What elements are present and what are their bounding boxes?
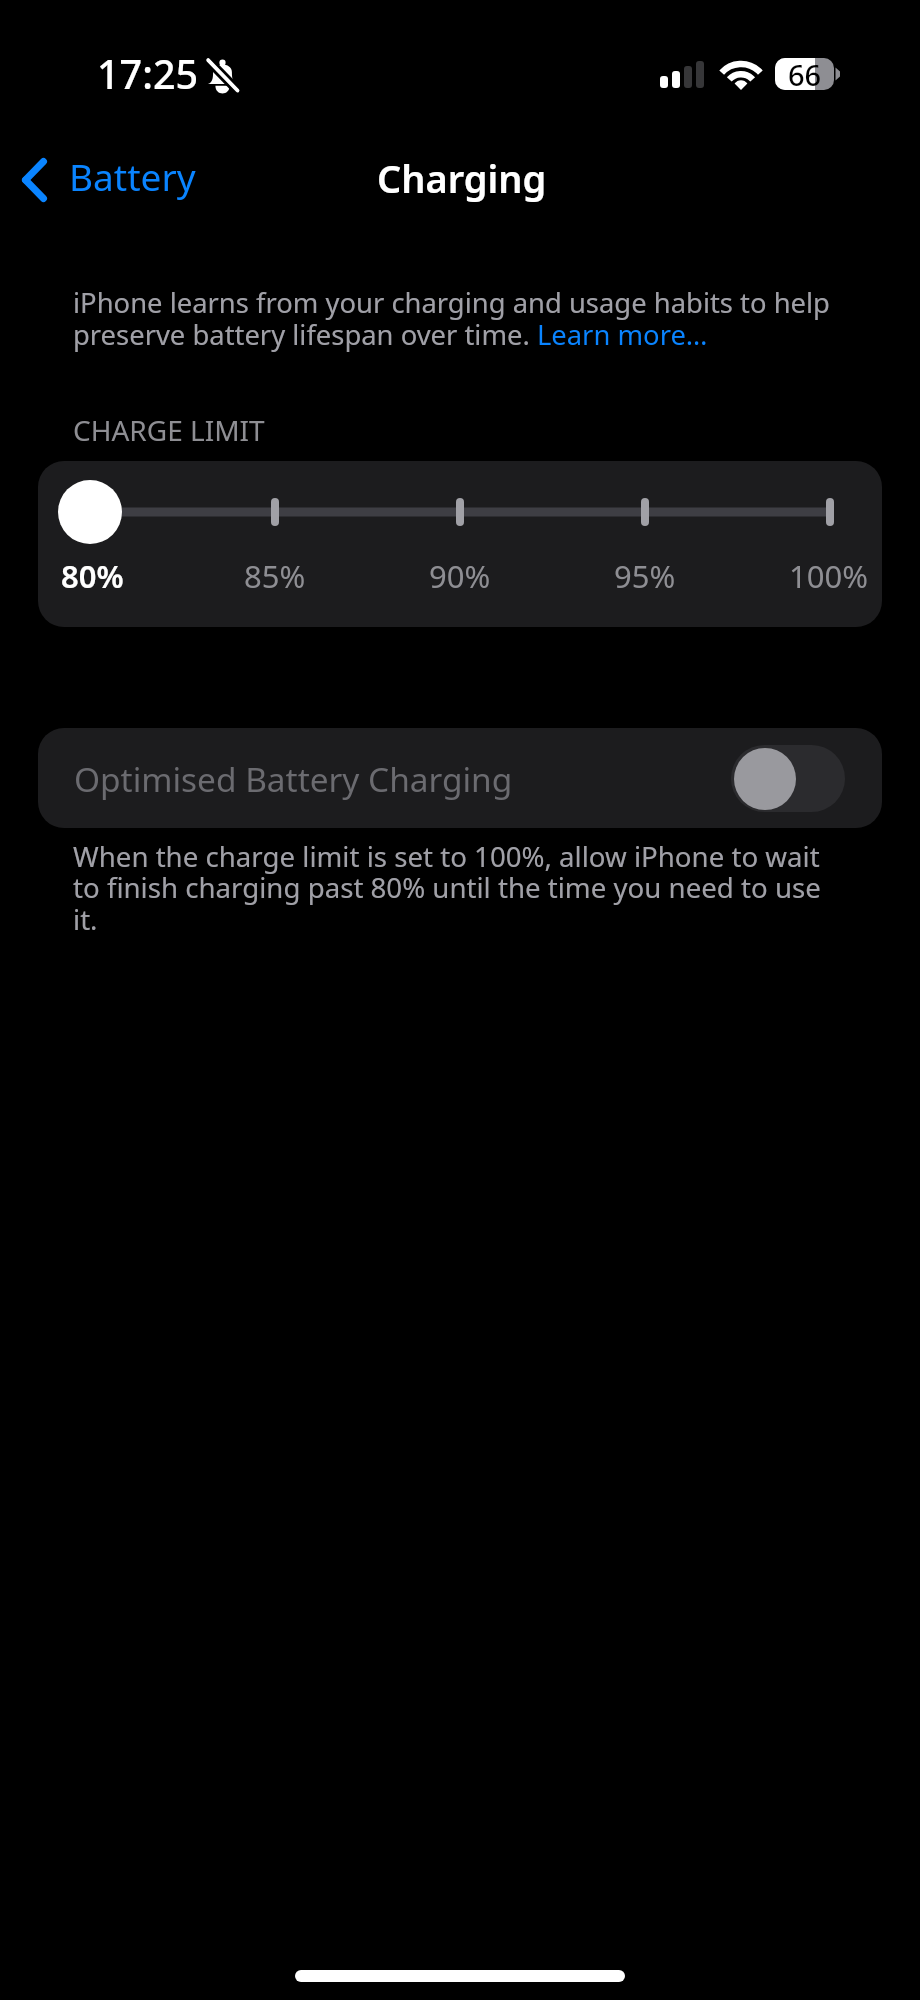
staticText: iPhone learns from your charging and usa… [73,284,853,353]
staticText: 66 [788,55,822,88]
staticText: 95% [614,555,676,597]
staticText: 80% [61,555,124,597]
staticText: 90% [429,555,491,597]
staticText: 85% [244,555,306,597]
button[interactable]: Battery [10,147,208,213]
staticText: 100% [789,555,868,597]
staticText: 17:25 [97,47,199,101]
button[interactable]: Optimised Battery Charging, off [731,745,845,812]
staticText: Optimised Battery Charging [74,756,513,801]
button[interactable]: Learn more [537,320,709,354]
staticText: Charging [377,152,547,204]
staticText: When the charge limit is set to 100%, al… [73,837,838,938]
staticText: Battery [69,151,196,201]
button[interactable]: Optimised Battery Charging [38,728,882,828]
button[interactable]: Charge limit slider, 80 percent [38,461,882,627]
staticText: CHARGE LIMIT [73,411,265,449]
